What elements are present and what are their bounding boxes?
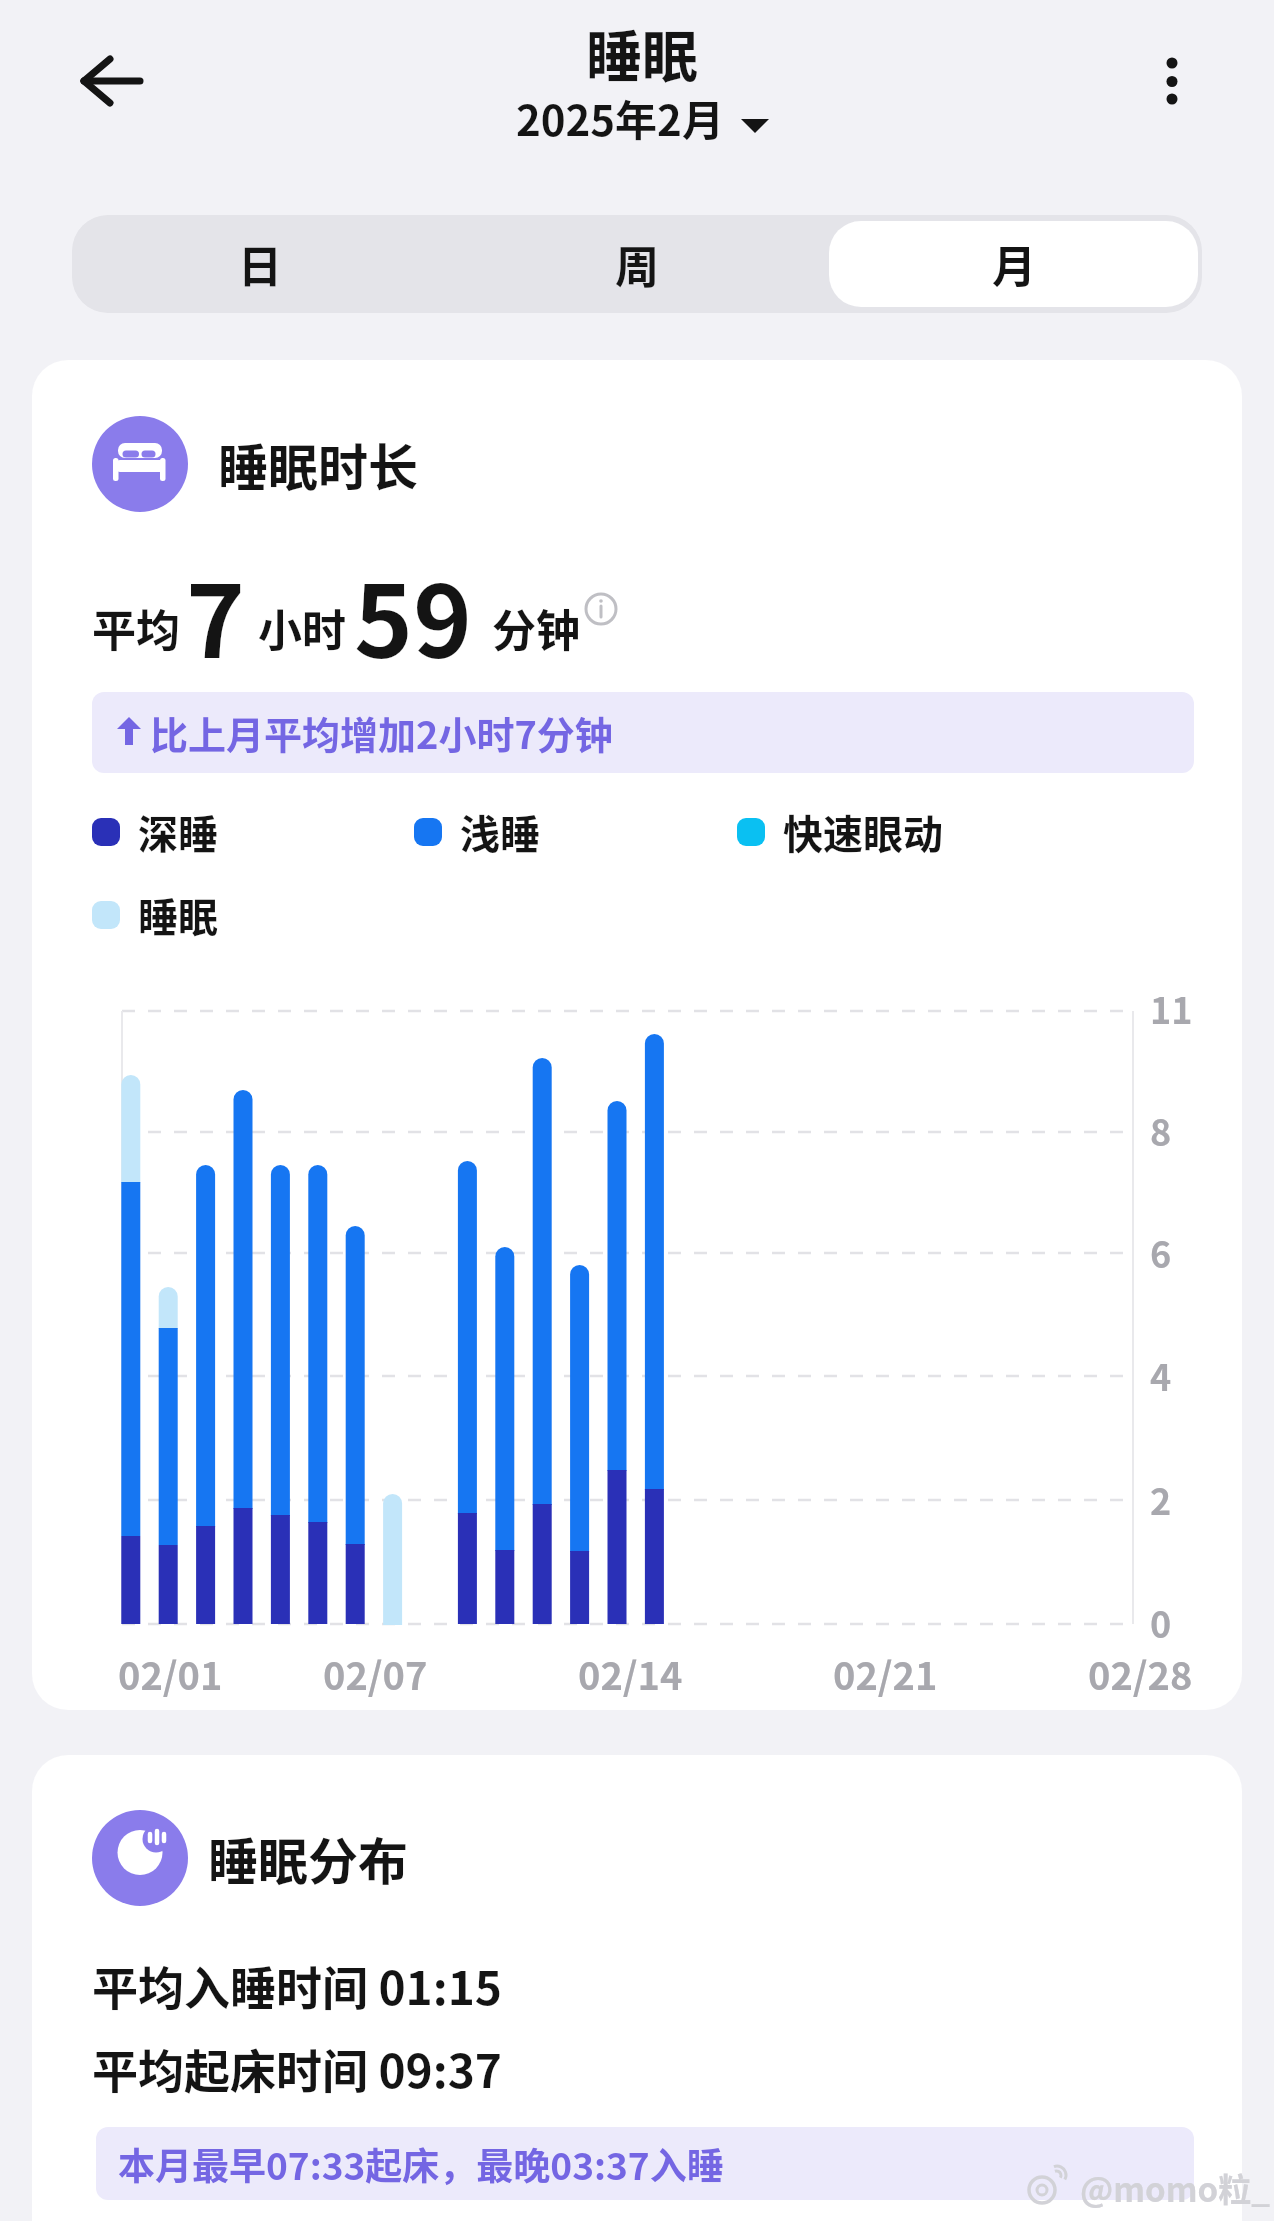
staticText: 02/07: [323, 1646, 428, 1701]
button[interactable]: [70, 47, 154, 115]
staticText: 月: [992, 232, 1036, 296]
staticText: 6: [1150, 1226, 1172, 1278]
staticText: 小时: [258, 596, 346, 660]
staticText: 比上月平均增加2小时7分钟: [150, 705, 613, 760]
staticText: 睡眠: [138, 886, 218, 944]
staticText: 59: [354, 542, 472, 687]
staticText: 平均入睡时间 01:15: [92, 1952, 502, 2019]
button[interactable]: [584, 592, 618, 626]
button[interactable]: 月: [825, 215, 1202, 313]
staticText: 7: [186, 542, 245, 687]
staticText: 4: [1150, 1349, 1172, 1401]
button[interactable]: 2025年2月: [440, 95, 840, 159]
staticText: 平均起床时间 09:37: [92, 2035, 502, 2102]
staticText: 周: [615, 232, 659, 296]
staticText: 02/28: [1088, 1646, 1193, 1701]
staticText: 日: [238, 232, 282, 296]
staticText: 睡眠时长: [218, 428, 418, 500]
staticText: 深睡: [138, 803, 218, 861]
staticText: 平均: [92, 596, 180, 660]
staticText: 0: [1150, 1596, 1172, 1648]
staticText: 02/21: [833, 1646, 938, 1701]
staticText: 2: [1150, 1473, 1172, 1525]
staticText: 睡眠分布: [208, 1822, 408, 1894]
staticText: 8: [1150, 1104, 1172, 1156]
staticText: 本月最早07:33起床，最晚03:37入睡: [118, 2137, 724, 2191]
button[interactable]: 周: [448, 215, 825, 313]
staticText: @momo粒_: [1080, 2164, 1270, 2212]
staticText: 02/14: [578, 1646, 683, 1701]
staticText: 快速眼动: [783, 803, 943, 861]
button[interactable]: 日: [72, 215, 448, 313]
staticText: 2025年2月: [516, 87, 724, 148]
staticText: 分钟: [492, 596, 580, 660]
staticText: 11: [1150, 982, 1193, 1034]
button[interactable]: [1142, 45, 1202, 117]
staticText: 02/01: [118, 1646, 223, 1701]
staticText: 浅睡: [460, 803, 540, 861]
staticText: 睡眠: [586, 12, 698, 93]
